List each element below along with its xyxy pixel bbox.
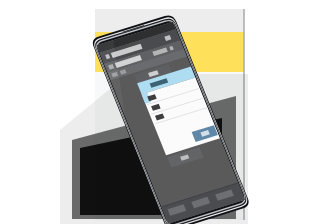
- button[interactable]: Phone mockup illustration: [0, 0, 325, 224]
